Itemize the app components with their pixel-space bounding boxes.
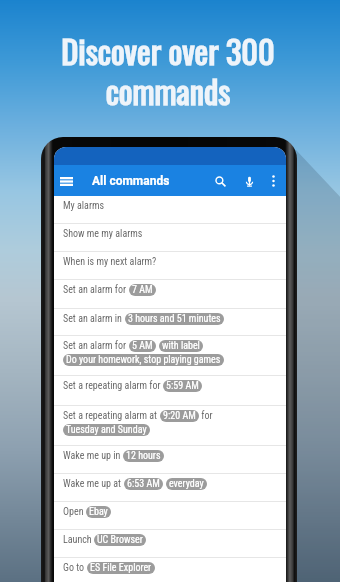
button[interactable]: Wake me up at — [54, 474, 286, 501]
staticText: 12 hours — [126, 450, 161, 462]
button[interactable]: Set a repeating alarm at — [54, 406, 286, 445]
staticText: 3 hours and 51 minutes — [128, 313, 221, 325]
button[interactable]: Set an alarm for — [54, 336, 286, 375]
button[interactable]: More options — [264, 172, 282, 190]
staticText: Launch — [63, 534, 94, 546]
button[interactable]: Set a repeating alarm for — [54, 376, 286, 405]
button[interactable]: Wake me up in — [54, 446, 286, 473]
staticText: UC Browser — [97, 534, 143, 546]
button[interactable]: Open — [54, 502, 286, 529]
staticText: Open — [63, 506, 86, 518]
button[interactable]: Navigation menu — [57, 172, 75, 190]
staticText: Tuesday and Sunday — [66, 424, 147, 436]
staticText: 5:59 AM — [166, 380, 199, 392]
button[interactable]: Set an alarm in — [54, 309, 286, 335]
staticText: Wake me up at — [63, 478, 124, 490]
staticText: All commands — [92, 174, 170, 188]
staticText: for — [199, 410, 213, 422]
staticText: ES File Explorer — [90, 562, 152, 574]
button[interactable]: Show me my alarms — [54, 224, 286, 251]
staticText: 6:53 AM — [127, 478, 160, 490]
staticText: 7 AM — [132, 284, 153, 296]
staticText: Wake me up in — [63, 450, 123, 462]
staticText: Set an alarm for — [63, 284, 129, 296]
button[interactable]: Go to — [54, 558, 286, 582]
staticText: My alarms — [63, 200, 105, 212]
button[interactable]: My alarms — [54, 196, 286, 223]
staticText: Set an alarm in — [63, 313, 125, 325]
button[interactable]: When is my next alarm? — [54, 252, 286, 279]
staticText: Discover over 300 commands — [61, 26, 275, 114]
staticText: Show me my alarms — [63, 228, 143, 240]
staticText: everyday — [169, 478, 204, 490]
staticText: 5 AM — [132, 340, 153, 352]
staticText: with label — [162, 340, 200, 352]
staticText: Set a repeating alarm for — [63, 380, 163, 392]
button[interactable]: Voice search — [239, 171, 259, 191]
button[interactable]: Search — [210, 171, 230, 191]
staticText: Set an alarm for — [63, 340, 129, 352]
staticText: 9:20 AM — [163, 410, 196, 422]
button[interactable]: Launch — [54, 530, 286, 557]
staticText: Ebay — [89, 506, 108, 518]
button[interactable]: Set an alarm for — [54, 280, 286, 308]
staticText: Set a repeating alarm at — [63, 410, 160, 422]
staticText: Go to — [63, 562, 87, 574]
staticText: Do your homework, stop playing games — [66, 354, 221, 366]
staticText: When is my next alarm? — [63, 256, 157, 268]
